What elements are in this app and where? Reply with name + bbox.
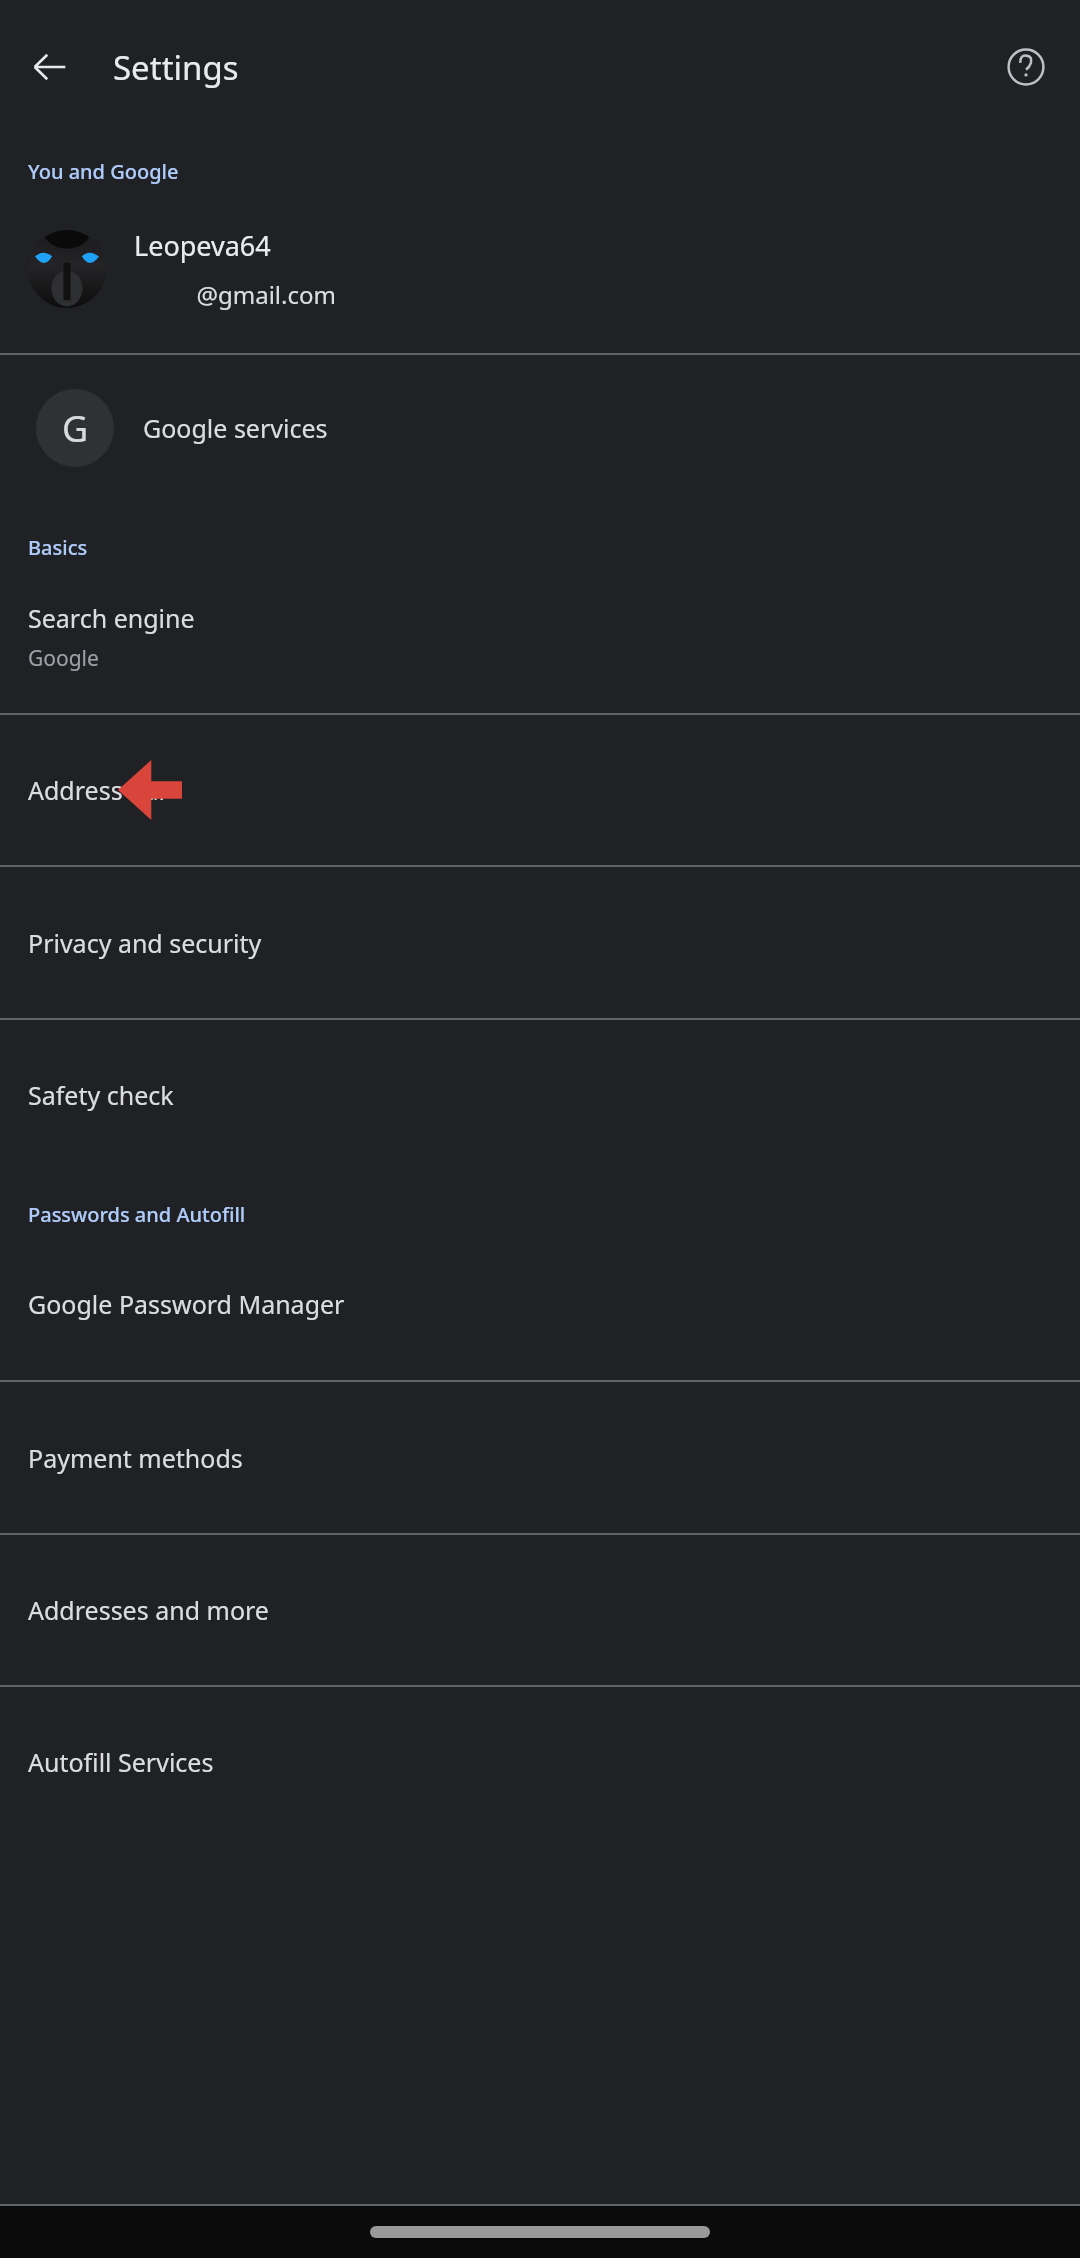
- staticText: Google services: [143, 411, 328, 445]
- staticText: Basics: [28, 534, 1080, 561]
- button[interactable]: Back: [18, 35, 82, 99]
- button[interactable]: Leopeva64: [0, 185, 1080, 353]
- button[interactable]: Search engine: [0, 561, 1080, 713]
- button[interactable]: Payment methods: [0, 1382, 1080, 1533]
- staticText: Safety check: [28, 1078, 174, 1112]
- staticText: Search engine: [28, 601, 195, 635]
- button[interactable]: Privacy and security: [0, 867, 1080, 1018]
- staticText: Privacy and security: [28, 926, 262, 960]
- staticText: Payment methods: [28, 1441, 243, 1475]
- staticText: Google: [28, 644, 99, 673]
- button[interactable]: Safety check: [0, 1020, 1080, 1170]
- staticText: You and Google: [28, 158, 1080, 185]
- button[interactable]: Help and feedback: [994, 35, 1058, 99]
- button[interactable]: G: [0, 355, 1080, 501]
- staticText: Leopeva64: [134, 227, 271, 264]
- staticText: G: [62, 404, 89, 453]
- button[interactable]: Address bar: [0, 715, 1080, 865]
- staticText: Google Password Manager: [28, 1287, 345, 1321]
- staticText: Passwords and Autofill: [28, 1201, 1080, 1228]
- button[interactable]: Autofill Services: [0, 1687, 1080, 1837]
- staticText: Autofill Services: [28, 1745, 214, 1779]
- button[interactable]: Google Password Manager: [0, 1228, 1080, 1380]
- staticText: @gmail.com: [134, 278, 336, 311]
- staticText: Address bar: [28, 773, 169, 807]
- staticText: Addresses and more: [28, 1593, 269, 1627]
- staticText: Settings: [113, 45, 239, 90]
- button[interactable]: Addresses and more: [0, 1535, 1080, 1685]
